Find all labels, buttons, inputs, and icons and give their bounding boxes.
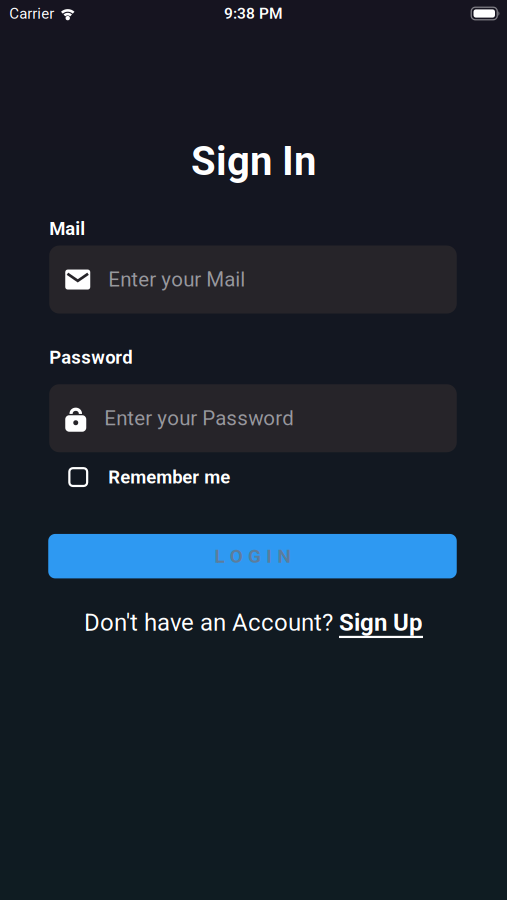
button[interactable]: Enter your Mail xyxy=(49,246,457,314)
staticText: Don't have an Account? xyxy=(84,608,339,636)
staticText: Password xyxy=(49,347,132,368)
staticText: Enter your Password xyxy=(104,406,294,430)
staticText: Sign Up xyxy=(339,608,423,636)
button[interactable]: Remember me xyxy=(49,466,230,488)
staticText: LOGIN xyxy=(214,545,290,567)
staticText: 9:38 PM xyxy=(224,4,283,23)
button[interactable]: Sign Up xyxy=(339,608,423,636)
staticText: Remember me xyxy=(108,466,230,488)
button[interactable]: Enter your Password xyxy=(49,384,457,452)
staticText: Sign In xyxy=(191,138,316,185)
staticText: Mail xyxy=(49,218,85,240)
staticText: Carrier xyxy=(9,5,54,22)
button[interactable]: LOGIN xyxy=(48,534,457,578)
staticText: Enter your Mail xyxy=(108,267,245,291)
